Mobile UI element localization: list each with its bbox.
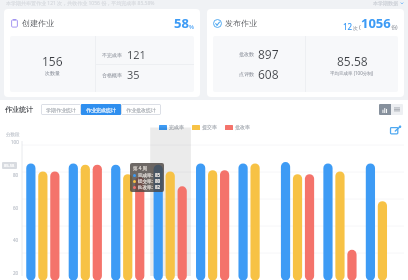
staticText: 完成率 [169, 124, 184, 130]
staticText: 分数段 [6, 132, 20, 138]
staticText: 次 [353, 25, 358, 31]
staticText: 100 [11, 139, 19, 145]
staticText: % [189, 23, 194, 31]
button[interactable]: Select semester [373, 0, 404, 6]
button[interactable]: 创建作业 [4, 9, 200, 97]
staticText: 20 [13, 270, 19, 276]
staticText: 608 [258, 66, 279, 82]
staticText: 发布作业 [225, 18, 257, 28]
staticText: 创建作业 [22, 18, 54, 28]
staticText: 897 [258, 46, 279, 62]
staticText: 提交率: [138, 178, 153, 184]
staticText: 58 [174, 14, 189, 32]
staticText: 85 [155, 172, 161, 178]
staticText: 85.58 [4, 163, 15, 168]
staticText: 60 [13, 205, 19, 211]
staticText: 批改数 [239, 51, 254, 57]
staticText: 平均完成率 (100分制) [330, 70, 374, 76]
staticText: 121 [127, 47, 146, 62]
button[interactable]: 学期作业统计 [41, 104, 81, 115]
staticText: 第 4 周 [133, 165, 147, 171]
staticText: 合格概率 [102, 72, 122, 78]
staticText: 40 [13, 237, 19, 243]
staticText: 作业完成统计 [86, 107, 116, 113]
staticText: 完成率: [138, 172, 153, 178]
staticText: 学期作业统计 [46, 107, 76, 113]
button[interactable]: 作业完成统计 [81, 104, 121, 115]
staticText: 85.58 [337, 53, 368, 69]
staticText: 份) [391, 24, 398, 31]
staticText: 80 [155, 178, 161, 184]
staticText: 35 [127, 67, 140, 82]
button[interactable]: List view [391, 104, 403, 115]
staticText: 1056 [361, 14, 391, 32]
button[interactable]: Chart view [379, 104, 391, 115]
staticText: 12 [343, 21, 353, 32]
button[interactable]: 作业批改统计 [121, 104, 161, 115]
staticText: 提交率 [202, 124, 217, 130]
staticText: 作业统计 [5, 105, 33, 114]
staticText: 批改率: [138, 184, 153, 190]
button[interactable]: Export chart [388, 124, 402, 138]
staticText: 80 [13, 172, 19, 178]
staticText: 82 [155, 184, 161, 190]
staticText: 次数量 [45, 70, 60, 76]
staticText: 批改率 [235, 124, 250, 130]
staticText: 不完成率 [102, 52, 122, 58]
staticText: ( [359, 23, 361, 31]
staticText: 156 [42, 53, 63, 69]
button[interactable]: 发布作业 [207, 9, 404, 97]
staticText: 本学期数据 [373, 0, 398, 6]
staticText: 点评数 [239, 71, 254, 77]
staticText: 本学期共布置作业 121 次，共收作业 1056 份，平均完成率 85.58% [6, 0, 155, 7]
staticText: 作业批改统计 [126, 107, 156, 113]
